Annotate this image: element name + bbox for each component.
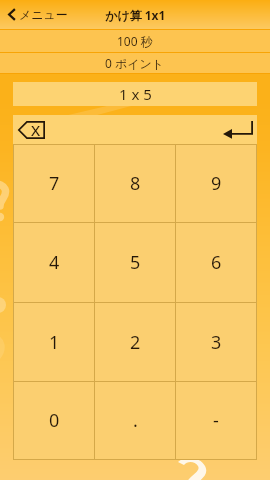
staticText: 5 — [130, 250, 141, 275]
button[interactable]: メニュー — [0, 4, 78, 25]
staticText: 0 ポイント — [105, 55, 165, 71]
button[interactable]: 2 — [95, 303, 175, 381]
button[interactable]: 8 — [95, 145, 175, 222]
staticText: 4 — [49, 250, 60, 275]
staticText: 100 秒 — [117, 33, 153, 49]
staticText: - — [213, 408, 219, 433]
staticText: 6 — [211, 250, 222, 275]
button[interactable]: 9 — [176, 145, 256, 222]
button[interactable]: 3 — [176, 303, 256, 381]
button[interactable]: 7 — [14, 145, 94, 222]
staticText: 8 — [130, 171, 141, 196]
button[interactable]: 4 — [14, 223, 94, 302]
button[interactable]: Backspace — [18, 121, 45, 139]
button[interactable]: . — [95, 382, 175, 459]
button[interactable]: Enter — [223, 121, 253, 139]
staticText: X — [31, 120, 41, 138]
staticText: 0 — [49, 408, 60, 433]
button[interactable]: 1 — [14, 303, 94, 381]
button[interactable]: 0 — [14, 382, 94, 459]
staticText: . — [133, 408, 138, 433]
button[interactable]: 5 — [95, 223, 175, 302]
staticText: 9 — [211, 171, 222, 196]
button[interactable]: 6 — [176, 223, 256, 302]
staticText: 2 — [130, 330, 141, 355]
staticText: 3 — [211, 330, 222, 355]
staticText: かけ算 1x1 — [105, 7, 166, 23]
staticText: 1 — [49, 330, 60, 355]
staticText: メニュー — [19, 7, 68, 22]
staticText: 7 — [49, 171, 60, 196]
staticText: 1 x 5 — [119, 84, 152, 104]
button[interactable]: - — [176, 382, 256, 459]
